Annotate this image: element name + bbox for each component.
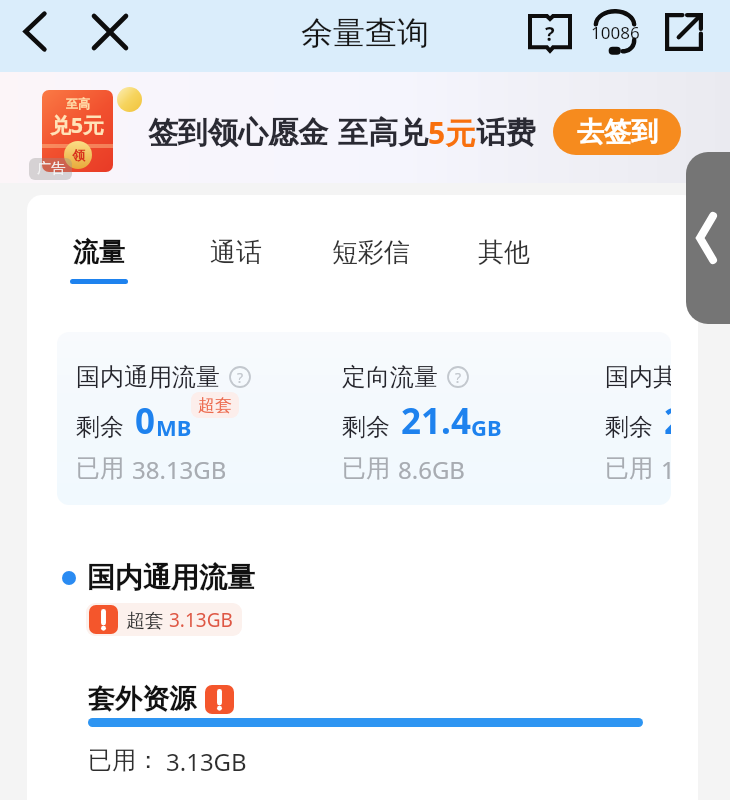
staticText: 已用： — [88, 745, 160, 775]
staticText: 领 — [72, 147, 85, 163]
staticText: 21.4 — [401, 397, 471, 445]
staticText: ? — [237, 368, 244, 387]
staticText: 流量 — [73, 236, 125, 269]
staticText: 8.6GB — [398, 453, 465, 486]
staticText: 至高兑 — [338, 114, 428, 152]
button[interactable]: 其他 — [478, 236, 530, 284]
staticText: 短彩信 — [332, 236, 410, 269]
staticText: 3.13GB — [169, 607, 233, 633]
staticText: 至高 — [66, 96, 90, 111]
staticText: 签到领心愿金 — [148, 114, 328, 152]
staticText: 已用 — [605, 453, 653, 483]
staticText: 1.2GB — [661, 453, 671, 486]
staticText: 已用 — [76, 453, 124, 483]
button[interactable]: 短彩信 — [332, 236, 478, 284]
button[interactable]: Help — [518, 1, 582, 65]
staticText: 兑5元 — [50, 111, 105, 140]
staticText: 38.13GB — [132, 453, 227, 486]
staticText: 套外资源 — [88, 682, 196, 716]
staticText: 3.13GB — [166, 745, 247, 778]
button[interactable]: Close — [80, 2, 140, 62]
staticText: 已用 — [342, 453, 390, 483]
button[interactable]: Call 10086 — [584, 0, 646, 62]
staticText: 5元 — [428, 112, 476, 153]
button[interactable]: 通话 — [210, 236, 332, 284]
staticText: ? — [545, 20, 555, 47]
staticText: 剩余 — [76, 412, 124, 442]
staticText: 国内其他流量 — [605, 362, 671, 392]
staticText: MB — [156, 412, 192, 442]
staticText: ? — [455, 368, 462, 387]
staticText: 余量查询 — [301, 13, 429, 53]
staticText: 定向流量 — [342, 362, 438, 392]
staticText: 剩余 — [605, 412, 653, 442]
staticText: 剩余 — [342, 412, 390, 442]
staticText: 国内通用流量 — [76, 362, 220, 392]
staticText: 广告 — [37, 160, 65, 178]
staticText: 2 — [664, 397, 671, 445]
staticText: 其他 — [478, 236, 530, 269]
staticText: GB — [471, 412, 502, 442]
staticText: 国内通用流量 — [87, 560, 255, 595]
staticText: 通话 — [210, 236, 262, 269]
staticText: 超套 — [126, 607, 169, 633]
button[interactable]: Expand side panel — [686, 152, 730, 324]
staticText: 超套 — [198, 395, 232, 416]
button[interactable]: Back — [6, 2, 64, 60]
button[interactable]: 流量 — [70, 236, 210, 284]
button[interactable]: 去签到 — [553, 109, 681, 155]
button[interactable]: 至高 — [0, 72, 730, 183]
staticText: 话费 — [476, 114, 536, 152]
staticText: 去签到 — [577, 115, 658, 149]
staticText: 10086 — [591, 21, 639, 44]
button[interactable]: Share — [653, 1, 714, 62]
staticText: 0 — [135, 397, 156, 445]
